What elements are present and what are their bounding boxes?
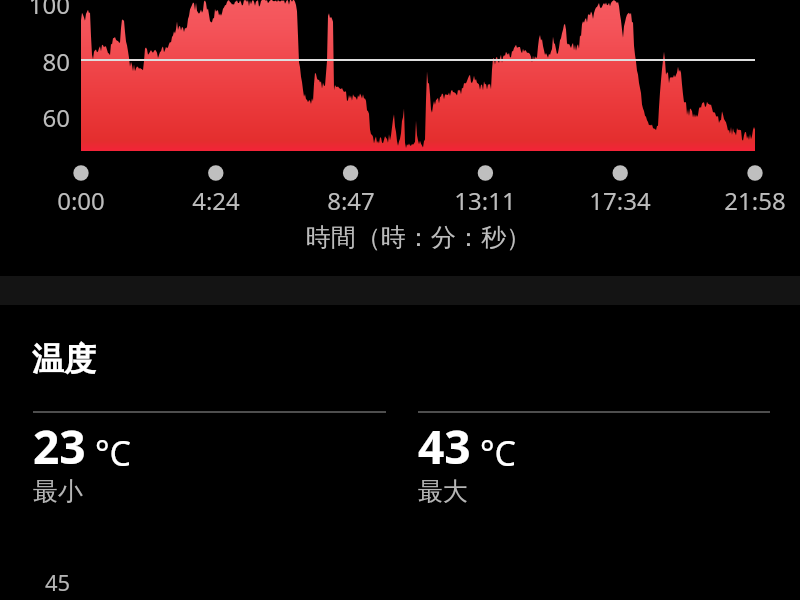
staticText: 80	[42, 45, 70, 78]
staticText: 13:11	[454, 184, 516, 217]
staticText: °C	[95, 430, 132, 476]
button[interactable]: 23	[33, 411, 386, 509]
staticText: 0:00	[57, 184, 105, 217]
staticText: 時間（時：分：秒）	[306, 222, 531, 253]
staticText: 8:47	[327, 184, 375, 217]
staticText: 17:34	[589, 184, 651, 217]
staticText: 4:24	[192, 184, 240, 217]
staticText: 最大	[418, 476, 468, 507]
staticText: 43	[418, 415, 471, 478]
staticText: 100	[28, 0, 70, 21]
staticText: 最小	[33, 476, 83, 507]
staticText: 21:58	[724, 184, 786, 217]
staticText: 45	[45, 567, 71, 597]
button[interactable]: Heart rate chart	[0, 0, 800, 185]
button[interactable]: 43	[418, 411, 770, 509]
staticText: 温度	[32, 339, 96, 379]
staticText: °C	[480, 430, 517, 476]
staticText: 60	[42, 101, 70, 134]
staticText: 23	[33, 415, 86, 478]
